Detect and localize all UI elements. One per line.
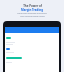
staticText: your buying power today xyxy=(20,15,45,18)
button[interactable]: Leverage chip xyxy=(6,48,10,50)
button[interactable]: Status badge xyxy=(6,37,11,39)
staticText: Trade with leverage and boost xyxy=(17,12,47,15)
staticText: Margin Trading xyxy=(21,8,43,12)
button[interactable]: Primary action xyxy=(6,57,22,59)
staticText: The Power of xyxy=(23,4,42,8)
